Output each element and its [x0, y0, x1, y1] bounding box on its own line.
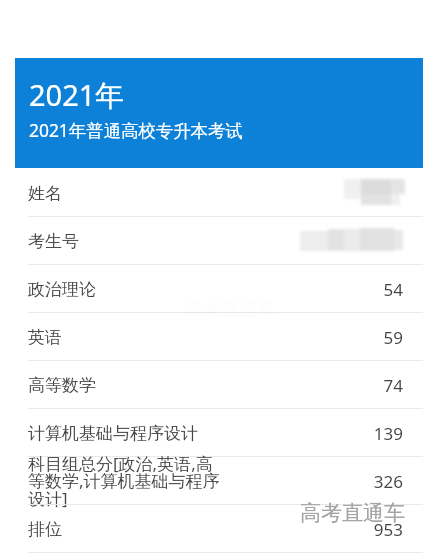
button[interactable]: 排位 [0, 505, 438, 553]
staticText: 54 [383, 278, 403, 301]
button[interactable]: 2021年 [15, 58, 423, 168]
staticText: 326 [373, 470, 403, 493]
button[interactable]: 考生号 [0, 217, 438, 265]
staticText: 高考直通车 [185, 299, 275, 322]
staticText: 高考直通车 [300, 500, 405, 526]
staticText: 74 [383, 374, 403, 397]
staticText: 计算机基础与程序设计 [28, 423, 224, 444]
button[interactable]: 英语 [0, 313, 438, 361]
button[interactable]: 政治理论 [0, 265, 438, 313]
staticText: 考生号 [28, 231, 224, 252]
staticText: 2021年普通高校专升本考试 [29, 118, 243, 142]
staticText: 科目组总分[政治,英语,高等数学,计算机基础与程序设计] [28, 452, 224, 510]
button[interactable]: 高等数学 [0, 361, 438, 409]
staticText: 139 [373, 422, 403, 445]
staticText: 排位 [28, 519, 224, 540]
staticText: 姓名 [28, 183, 224, 204]
button[interactable]: 科目组总分[政治,英语,高等数学,计算机基础与程序设计] [0, 457, 438, 505]
staticText: 英语 [28, 327, 224, 348]
staticText: 高等数学 [28, 375, 224, 396]
staticText: 953 [373, 518, 403, 541]
button[interactable]: 计算机基础与程序设计 [0, 409, 438, 457]
staticText: 59 [383, 326, 403, 349]
button[interactable]: 姓名 [0, 169, 438, 217]
staticText: 政治理论 [28, 279, 224, 300]
staticText: 2021年 [29, 75, 125, 115]
